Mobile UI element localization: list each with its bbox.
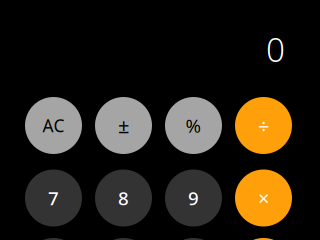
button[interactable]: 6 (165, 238, 222, 240)
staticText: AC (42, 114, 64, 137)
button[interactable]: 4 (25, 238, 82, 240)
staticText: 8 (118, 186, 129, 210)
button[interactable]: 5 (95, 238, 152, 240)
button[interactable]: Percent (165, 97, 222, 154)
staticText: 0 (266, 27, 285, 71)
staticText: ÷ (258, 112, 269, 139)
staticText: 7 (48, 186, 59, 210)
staticText: 9 (188, 186, 199, 210)
button[interactable]: 9 (165, 169, 222, 226)
staticText: % (185, 113, 201, 138)
staticText: ± (118, 112, 129, 139)
button[interactable]: 7 (25, 169, 82, 226)
button[interactable]: AC (25, 97, 82, 154)
button[interactable]: Multiply (235, 169, 292, 226)
button[interactable]: Plus minus (95, 97, 152, 154)
button[interactable]: 8 (95, 169, 152, 226)
button[interactable]: Divide (235, 97, 292, 154)
staticText: × (258, 185, 269, 211)
button[interactable]: Minus (235, 238, 292, 240)
